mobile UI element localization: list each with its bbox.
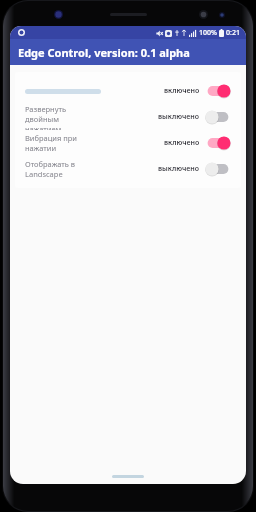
button[interactable]: Развернуть двойным нажатием bbox=[15, 104, 241, 130]
staticText: Вибрация при нажатии bbox=[25, 133, 94, 153]
button[interactable]: Toggle off bbox=[205, 162, 231, 176]
button[interactable]: Toggle on bbox=[205, 84, 231, 98]
staticText: Развернуть двойным нажатием bbox=[25, 104, 91, 130]
button[interactable]: включено bbox=[15, 78, 241, 104]
staticText: выключено bbox=[158, 164, 200, 174]
staticText: 0:21 bbox=[226, 28, 240, 38]
button[interactable]: Toggle off bbox=[205, 110, 231, 124]
staticText: включено bbox=[164, 86, 200, 96]
staticText: 100% bbox=[199, 28, 217, 38]
button[interactable]: Toggle on bbox=[205, 136, 231, 150]
button[interactable]: Отображать в Landscape bbox=[15, 156, 241, 182]
staticText: Edge Control, version: 0.1 alpha bbox=[18, 45, 190, 60]
staticText: выключено bbox=[158, 112, 200, 122]
staticText: Отображать в Landscape bbox=[25, 159, 91, 179]
button[interactable]: Вибрация при нажатии bbox=[15, 130, 241, 156]
staticText: включено bbox=[164, 138, 200, 148]
